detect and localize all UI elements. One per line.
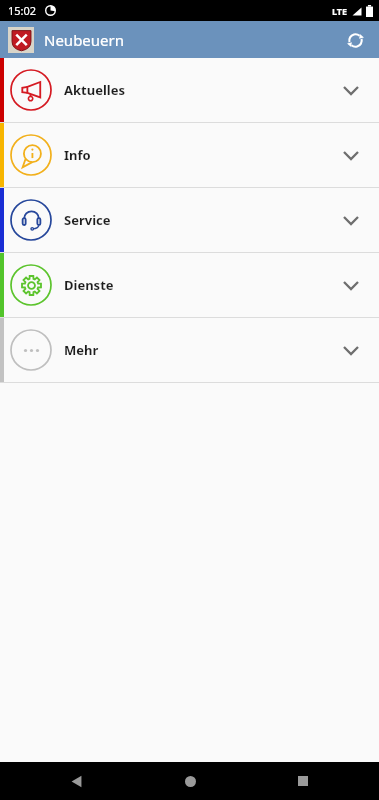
staticText: Dienste [64,276,114,294]
button[interactable]: Mehr [0,318,379,382]
button[interactable]: Back [62,767,90,795]
button[interactable]: Dienste [0,253,379,317]
button[interactable]: Refresh [339,24,371,56]
button[interactable]: Home [176,767,204,795]
staticText: Info [64,146,91,164]
button[interactable]: Recent apps [289,767,317,795]
staticText: Aktuelles [64,81,125,99]
staticText: Neubeuern [44,30,125,50]
staticText: 15:02 [8,3,37,18]
button[interactable]: Service [0,188,379,252]
staticText: Mehr [64,341,99,359]
staticText: LTE [332,5,348,17]
button[interactable]: Info [0,123,379,187]
staticText: Service [64,211,111,229]
button[interactable]: Aktuelles [0,58,379,122]
